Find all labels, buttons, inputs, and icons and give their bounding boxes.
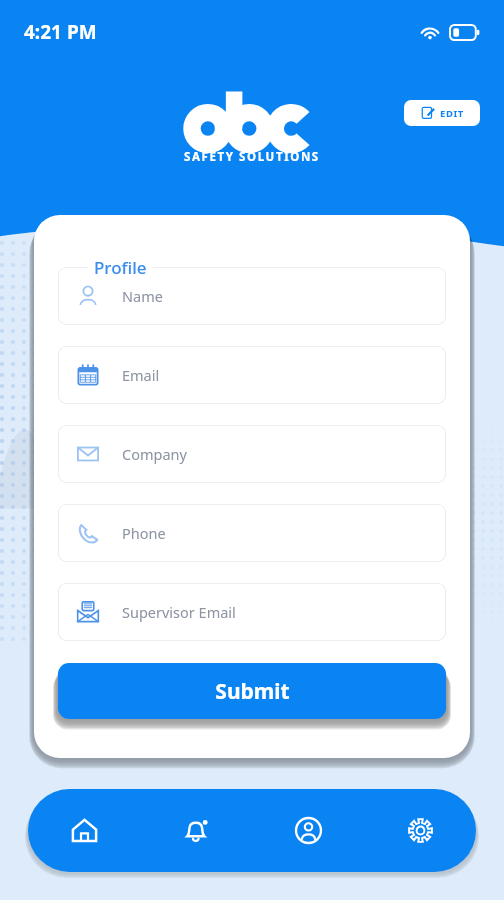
staticText: Submit <box>215 677 290 706</box>
button[interactable]: Notifications <box>140 789 252 872</box>
staticText: 4:21 PM <box>24 19 97 45</box>
staticText: SAFETY SOLUTIONS <box>184 149 320 165</box>
button[interactable]: Email <box>58 346 446 404</box>
staticText: Phone <box>122 523 166 543</box>
button[interactable]: Settings <box>364 789 476 872</box>
button[interactable]: Submit <box>58 663 446 719</box>
button[interactable]: Company <box>58 425 446 483</box>
button[interactable]: Profile <box>252 789 364 872</box>
button[interactable]: EDIT <box>404 100 480 126</box>
staticText: Profile <box>94 256 147 279</box>
staticText: Supervisor Email <box>122 602 236 622</box>
button[interactable]: Name <box>58 267 446 325</box>
staticText: Email <box>122 365 160 385</box>
button[interactable]: Home <box>28 789 140 872</box>
staticText: Company <box>122 444 187 464</box>
button[interactable]: Supervisor Email <box>58 583 446 641</box>
staticText: EDIT <box>440 107 464 120</box>
staticText: Name <box>122 286 163 306</box>
button[interactable]: Phone <box>58 504 446 562</box>
